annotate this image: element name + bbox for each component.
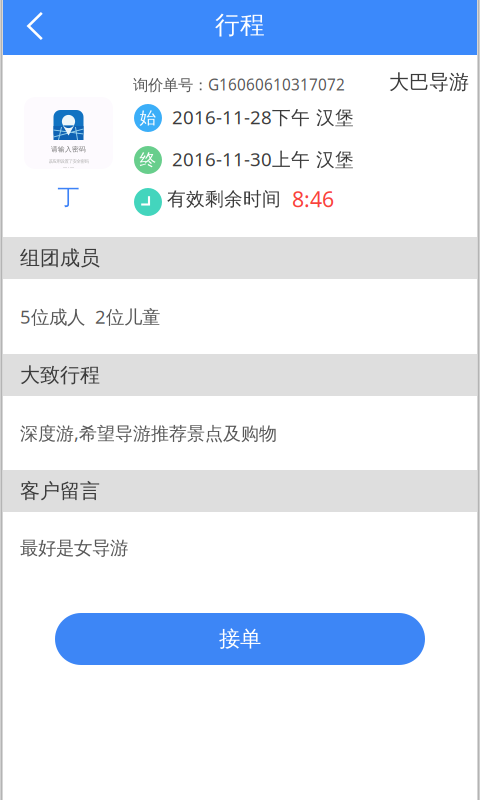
button[interactable]: 丁	[24, 186, 113, 208]
staticText: •••• • ••••	[63, 165, 74, 170]
staticText: 终	[139, 149, 156, 170]
staticText: 大致行程	[20, 362, 100, 388]
staticText: 询价单号：G16060610317072	[133, 74, 345, 95]
staticText: 5位成人 2位儿童	[20, 304, 160, 329]
staticText: 大巴导游	[389, 69, 469, 95]
staticText: 8:46	[292, 184, 334, 214]
staticText: 行程	[215, 9, 265, 41]
staticText: 最好是女导游	[20, 536, 128, 560]
staticText: 请输入密码	[51, 145, 86, 153]
staticText: 该应用设置了安全密码	[48, 158, 88, 164]
staticText: 丁	[57, 183, 79, 211]
staticText: 2016-11-30上午 汉堡	[172, 146, 354, 172]
button[interactable]: Back	[0, 1, 70, 51]
staticText: 接单	[219, 626, 261, 652]
staticText: 始	[139, 107, 156, 128]
staticText: 组团成员	[20, 245, 100, 271]
staticText: 深度游,希望导游推荐景点及购物	[20, 421, 277, 445]
button[interactable]: 接单	[55, 613, 425, 665]
staticText: 客户留言	[20, 478, 100, 504]
staticText: 有效剩余时间	[167, 187, 281, 211]
staticText: 2016-11-28下午 汉堡	[172, 104, 354, 130]
